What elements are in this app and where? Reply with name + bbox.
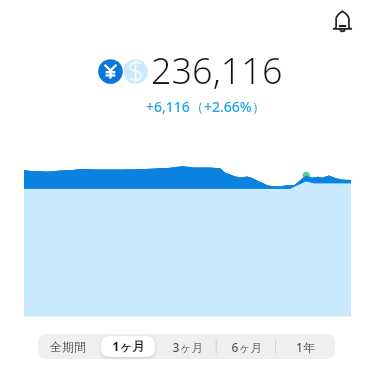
button[interactable]: USD [122, 58, 149, 85]
button[interactable]: 6ヶ月 [220, 336, 273, 357]
staticText: 全期間 [50, 339, 86, 354]
staticText: 1年 [296, 339, 315, 355]
button[interactable]: 全期間 [41, 336, 95, 357]
button[interactable]: 1ヶ月 [101, 336, 155, 357]
button[interactable]: 3ヶ月 [161, 336, 214, 357]
staticText: 6ヶ月 [231, 339, 263, 355]
button[interactable]: 1年 [279, 336, 332, 357]
staticText: （+2.66%） [190, 97, 266, 116]
staticText: +6,116 [146, 97, 190, 116]
button[interactable]: JPY [97, 58, 124, 85]
staticText: 3ヶ月 [172, 339, 204, 355]
staticText: 1ヶ月 [112, 338, 145, 355]
staticText: 236,116 [151, 46, 283, 95]
button[interactable]: Notifications [327, 5, 358, 36]
